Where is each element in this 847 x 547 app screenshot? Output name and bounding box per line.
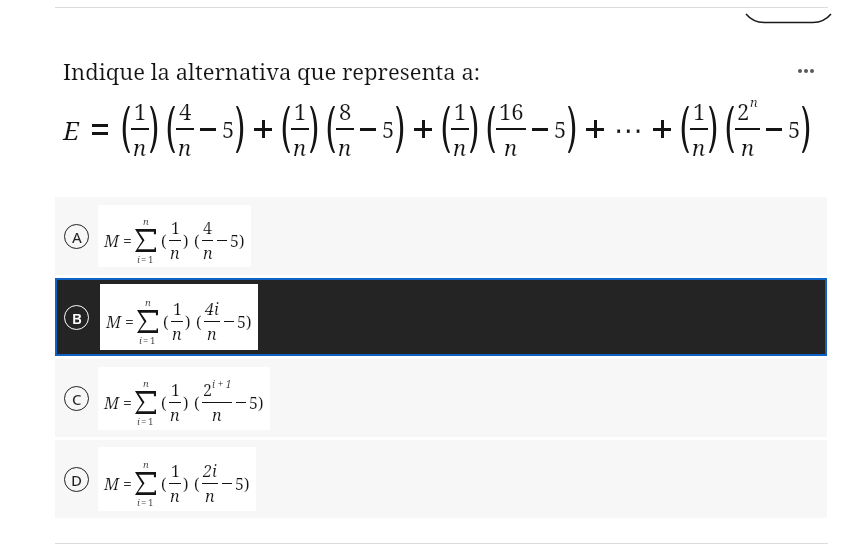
staticText: 5: [554, 114, 567, 144]
staticText: E: [63, 112, 80, 147]
staticText: 4: [203, 217, 212, 239]
button[interactable]: B: [57, 280, 825, 354]
staticText: =: [123, 473, 132, 495]
staticText: (: [194, 473, 200, 495]
staticText: 1: [148, 253, 154, 266]
staticText: (: [194, 230, 200, 252]
staticText: =: [143, 334, 149, 347]
staticText: n: [203, 242, 213, 264]
staticText: (: [196, 311, 202, 333]
staticText: C: [72, 389, 82, 409]
staticText: n: [207, 323, 217, 345]
staticText: ): [185, 311, 191, 333]
staticText: n: [205, 485, 215, 507]
staticText: n: [172, 323, 182, 345]
staticText: D: [71, 470, 82, 490]
staticText: 1: [148, 496, 154, 509]
staticText: 5: [230, 230, 239, 252]
staticText: n: [338, 132, 352, 162]
staticText: n: [453, 132, 467, 162]
staticText: 1: [171, 217, 180, 239]
staticText: n: [145, 296, 151, 309]
staticText: n: [741, 132, 755, 162]
staticText: A: [72, 227, 82, 247]
staticText: n: [293, 132, 307, 162]
staticText: (: [163, 311, 169, 333]
staticText: n: [750, 93, 758, 110]
staticText: ): [239, 230, 245, 252]
staticText: 5: [222, 114, 235, 144]
staticText: n: [170, 242, 180, 264]
staticText: =: [123, 230, 132, 252]
staticText: n: [133, 132, 147, 162]
staticText: 5: [235, 473, 244, 495]
staticText: ): [183, 473, 189, 495]
staticText: n: [178, 132, 192, 162]
staticText: 5: [788, 114, 801, 144]
staticText: M: [104, 473, 120, 495]
staticText: 5: [249, 392, 258, 414]
staticText: n: [143, 377, 149, 390]
staticText: n: [692, 132, 706, 162]
button[interactable]: D: [55, 440, 827, 518]
staticText: 2: [203, 379, 212, 401]
staticText: 16: [499, 96, 524, 126]
staticText: 1: [148, 415, 154, 428]
staticText: 4i: [205, 298, 219, 320]
staticText: Indique la alternativa que representa a:: [63, 56, 481, 86]
staticText: 1: [294, 96, 307, 126]
staticText: ): [244, 473, 250, 495]
staticText: 5: [382, 114, 395, 144]
staticText: n: [212, 404, 222, 426]
staticText: =: [141, 253, 147, 266]
staticText: 5: [237, 311, 246, 333]
staticText: 1: [150, 334, 156, 347]
staticText: B: [72, 308, 82, 328]
staticText: M: [106, 311, 122, 333]
staticText: 1: [693, 96, 706, 126]
staticText: ): [246, 311, 252, 333]
staticText: 1: [454, 96, 467, 126]
staticText: (: [161, 230, 167, 252]
staticText: i: [137, 415, 140, 428]
staticText: n: [170, 404, 180, 426]
staticText: n: [504, 132, 518, 162]
staticText: 1: [134, 96, 147, 126]
staticText: M: [104, 392, 120, 414]
staticText: 4: [179, 96, 192, 126]
staticText: ⋯: [614, 113, 643, 146]
button[interactable]: Button: [746, 0, 831, 23]
staticText: 1: [171, 460, 180, 482]
button[interactable]: A: [55, 197, 827, 275]
staticText: (: [161, 473, 167, 495]
staticText: n: [143, 215, 149, 228]
staticText: 1: [171, 379, 180, 401]
staticText: n: [170, 485, 180, 507]
staticText: =: [141, 415, 147, 428]
staticText: i: [137, 253, 140, 266]
button[interactable]: C: [55, 359, 827, 437]
staticText: (: [194, 392, 200, 414]
staticText: 1: [173, 298, 182, 320]
staticText: i: [137, 496, 140, 509]
staticText: ): [183, 392, 189, 414]
staticText: 8: [339, 96, 352, 126]
staticText: i: [139, 334, 142, 347]
staticText: ): [183, 230, 189, 252]
staticText: =: [125, 311, 134, 333]
staticText: 2i: [203, 460, 217, 482]
staticText: M: [104, 230, 120, 252]
staticText: n: [143, 458, 149, 471]
staticText: i + 1: [212, 377, 232, 391]
button[interactable]: More options: [793, 59, 819, 83]
staticText: 2: [737, 96, 750, 126]
staticText: (: [161, 392, 167, 414]
staticText: ): [258, 392, 264, 414]
staticText: =: [141, 496, 147, 509]
staticText: =: [123, 392, 132, 414]
